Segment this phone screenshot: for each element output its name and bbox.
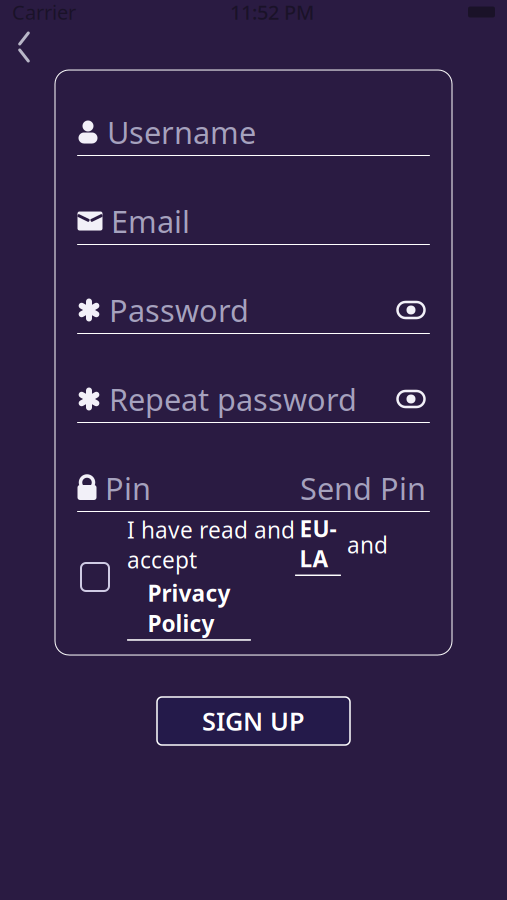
staticText: Pin xyxy=(105,468,151,508)
button[interactable]: Show repeated password xyxy=(392,383,430,415)
staticText: Email xyxy=(111,201,190,241)
staticText: Carrier xyxy=(12,0,76,25)
button[interactable]: Privacy Policy xyxy=(127,578,251,641)
staticText: Repeat password xyxy=(109,379,357,419)
button[interactable]: Show password xyxy=(392,294,430,326)
staticText: Send Pin xyxy=(300,468,426,508)
staticText: I have read and accept xyxy=(127,514,295,575)
button[interactable]: Send Pin xyxy=(296,462,430,514)
staticText: and xyxy=(341,530,388,560)
staticText: Username xyxy=(107,112,256,152)
staticText: Password xyxy=(109,290,249,330)
staticText: Privacy Policy xyxy=(147,578,230,638)
button[interactable]: Accept terms xyxy=(77,559,113,595)
staticText: SIGN UP xyxy=(202,704,305,738)
staticText: EULA xyxy=(299,513,336,573)
button[interactable]: SIGN UP xyxy=(157,697,350,745)
button[interactable]: Back xyxy=(2,25,46,69)
button[interactable]: EULA xyxy=(295,513,341,576)
staticText: 11:52 PM xyxy=(230,0,314,25)
